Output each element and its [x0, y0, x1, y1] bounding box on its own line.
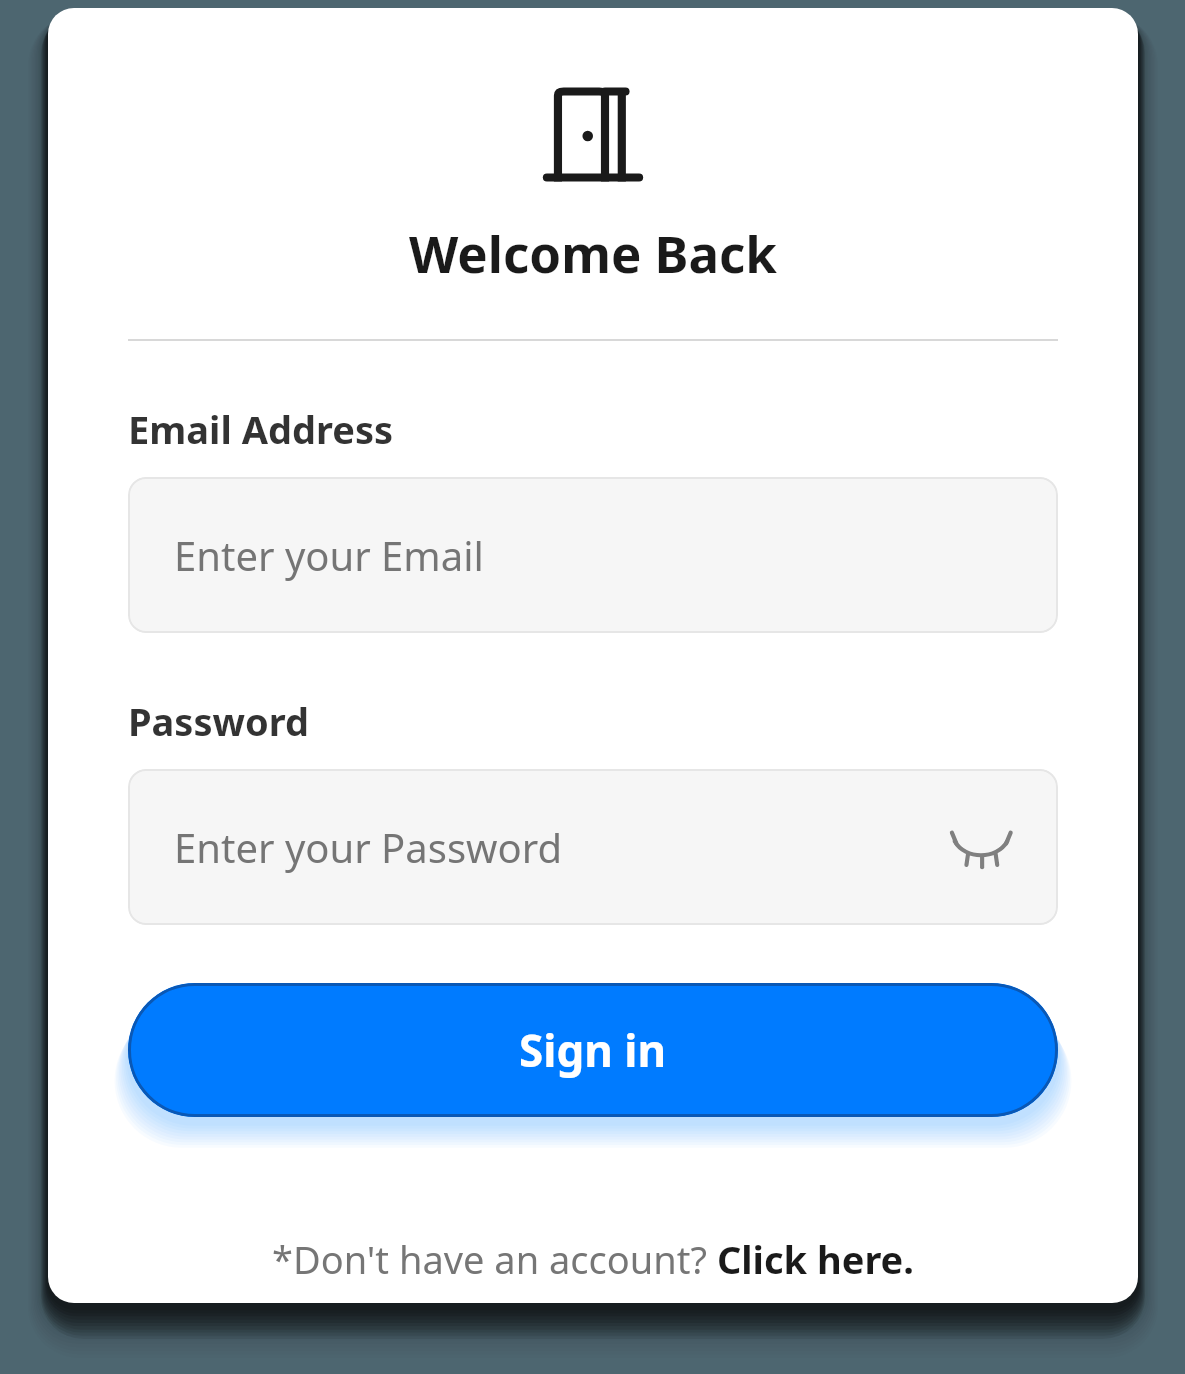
staticText: *Don't have an account? Click here.: [272, 1233, 914, 1285]
button[interactable]: Enter your Email: [128, 477, 1058, 633]
button[interactable]: Sign in: [128, 983, 1058, 1117]
staticText: Sign in: [519, 1020, 667, 1080]
button[interactable]: Show password: [950, 816, 1012, 878]
staticText: Password: [128, 695, 310, 747]
button[interactable]: *Don't have an account? Click here.: [128, 1233, 1058, 1285]
button[interactable]: Enter your Password: [128, 769, 1058, 925]
staticText: Welcome Back: [409, 218, 777, 287]
staticText: Email Address: [128, 403, 394, 455]
staticText: Enter your Password: [174, 820, 950, 874]
staticText: Enter your Email: [174, 528, 1012, 582]
